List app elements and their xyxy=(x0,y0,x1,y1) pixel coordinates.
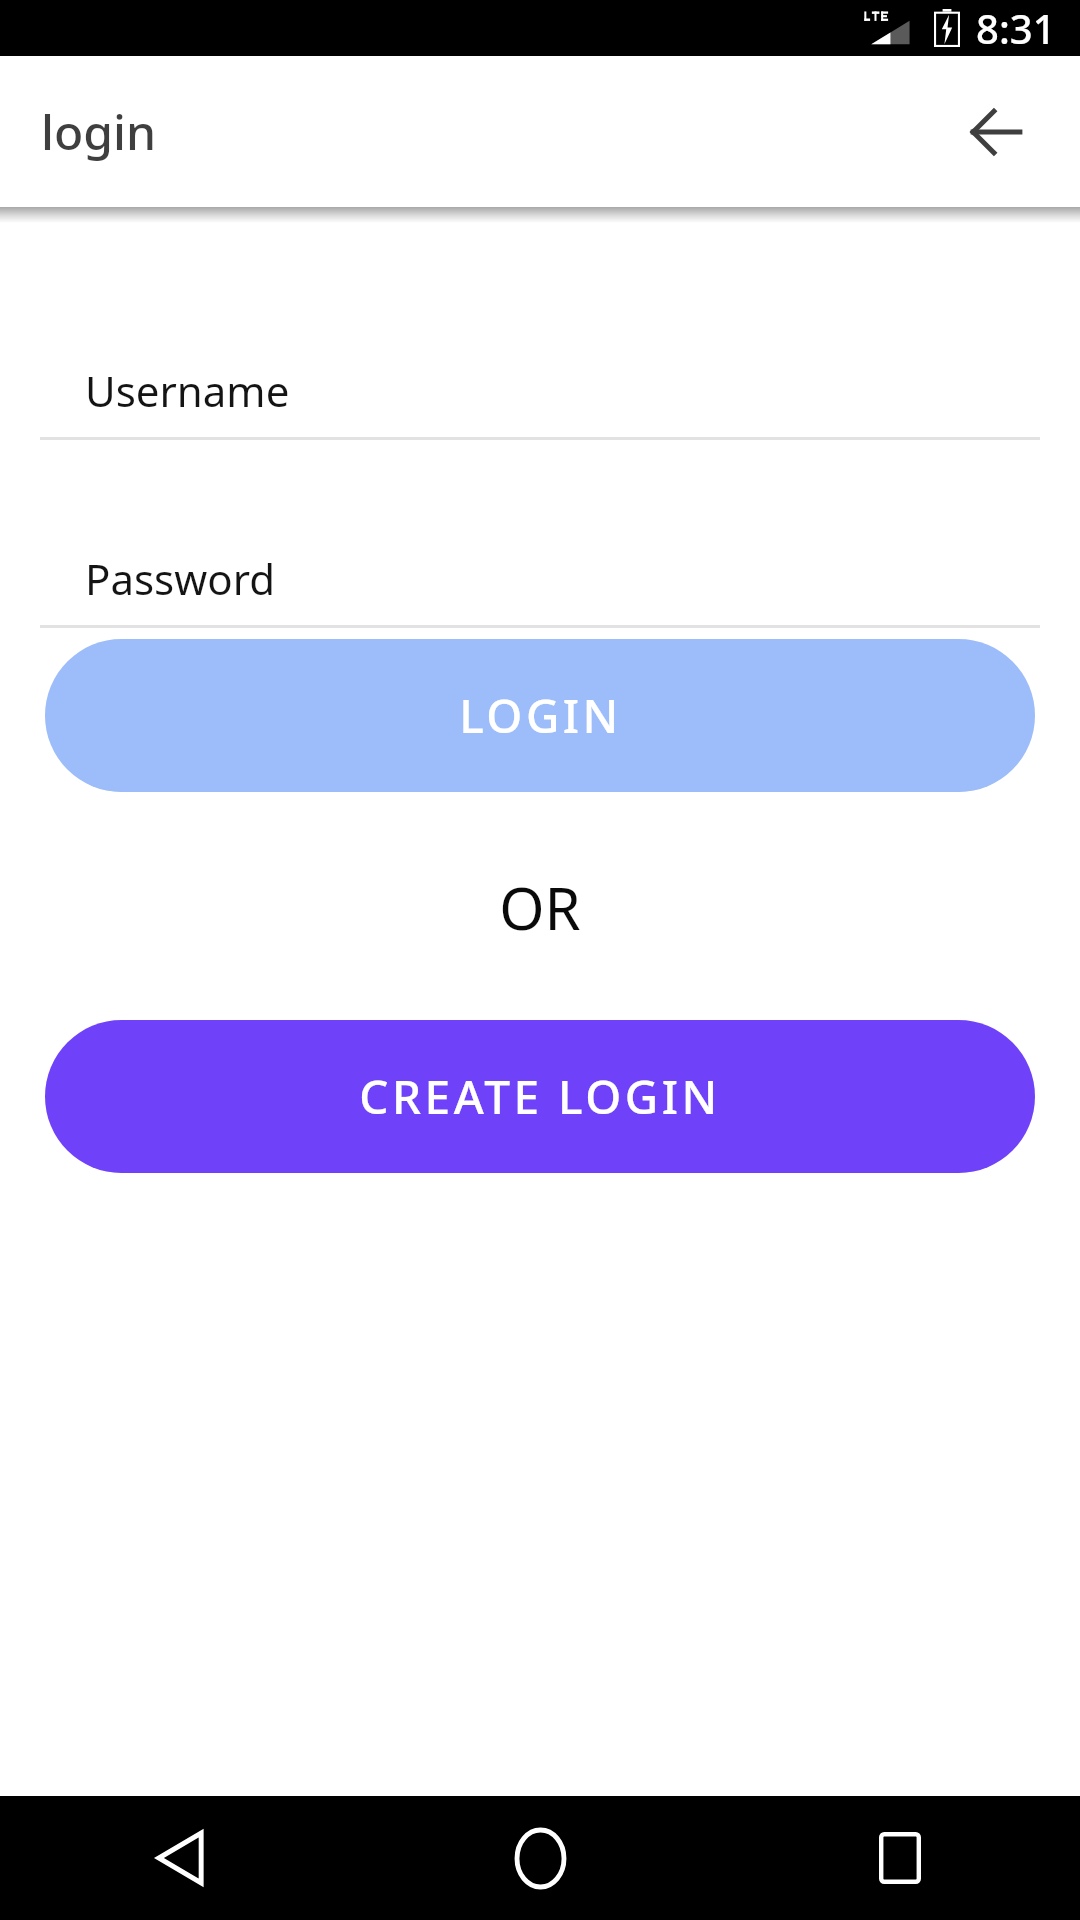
button[interactable]: Back xyxy=(0,1796,360,1920)
staticText: Password xyxy=(85,550,275,607)
button[interactable]: Back xyxy=(960,96,1032,168)
button[interactable]: Create login xyxy=(45,1020,1035,1173)
staticText: OR xyxy=(499,868,581,947)
button[interactable]: Recent apps xyxy=(720,1796,1080,1920)
button[interactable]: Login xyxy=(45,639,1035,792)
staticText: login xyxy=(41,99,157,164)
staticText: CREATE LOGIN xyxy=(359,1065,721,1128)
staticText: LOGIN xyxy=(459,684,622,747)
button[interactable]: Password xyxy=(40,550,1040,607)
staticText: Username xyxy=(85,362,290,419)
staticText: 8:31 xyxy=(976,1,1056,55)
button[interactable]: Home xyxy=(360,1796,720,1920)
button[interactable]: Username xyxy=(40,362,1040,419)
